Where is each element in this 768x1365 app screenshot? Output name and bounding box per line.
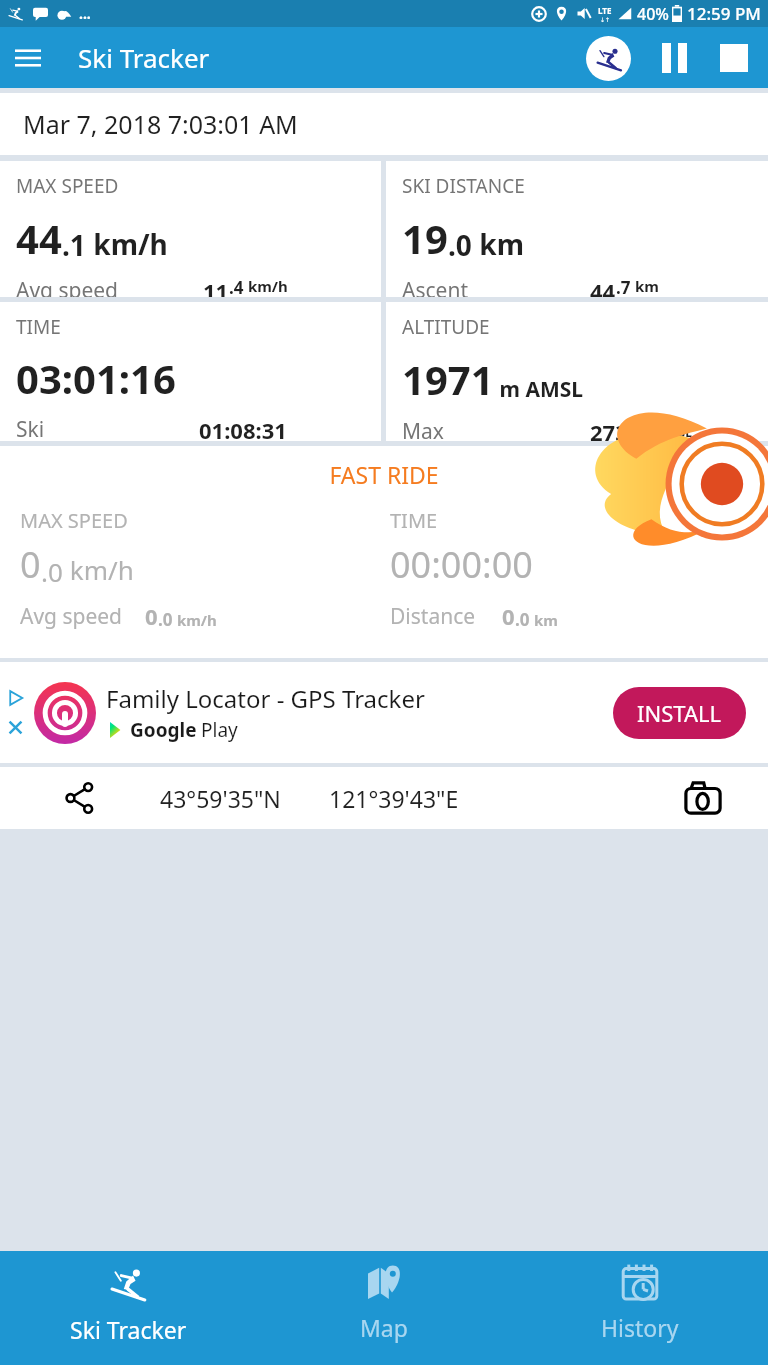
staticText: Ascent bbox=[402, 276, 468, 297]
staticText: Ski Tracker bbox=[70, 1314, 187, 1345]
staticText: m AMSL bbox=[641, 424, 692, 440]
button[interactable]: FAST RIDE bbox=[0, 446, 768, 658]
staticText: ALTITUDE bbox=[402, 314, 490, 340]
button[interactable]: Take photo bbox=[638, 767, 768, 829]
staticText: 121°39'43"E bbox=[329, 783, 459, 814]
button[interactable]: Ski Tracker bbox=[0, 1251, 256, 1365]
button[interactable]: Mar 7, 2018 7:03:01 AM bbox=[0, 93, 768, 155]
button[interactable]: ALTITUDE bbox=[386, 302, 768, 441]
staticText: TIME bbox=[16, 314, 61, 340]
staticText: 03:01:16 bbox=[16, 351, 176, 405]
staticText: Map bbox=[360, 1312, 408, 1343]
button[interactable]: Open navigation menu bbox=[0, 30, 56, 86]
staticText: km bbox=[631, 276, 659, 296]
button[interactable]: Map bbox=[256, 1251, 512, 1365]
staticText: .0 bbox=[448, 226, 472, 264]
staticText: 1971 bbox=[402, 352, 494, 406]
staticText: Google bbox=[130, 717, 197, 743]
staticText: 0 bbox=[502, 601, 515, 631]
staticText: 44 bbox=[590, 276, 616, 297]
staticText: 43°59'35"N bbox=[160, 783, 281, 814]
staticText: 0 bbox=[20, 540, 41, 589]
staticText: Distance bbox=[390, 602, 476, 631]
staticText: m AMSL bbox=[494, 375, 584, 404]
staticText: km bbox=[472, 225, 524, 263]
staticText: km/h bbox=[244, 276, 288, 296]
staticText: Max bbox=[402, 417, 444, 441]
staticText: 44 bbox=[16, 211, 62, 265]
button[interactable]: Start ski tracking bbox=[580, 30, 636, 86]
staticText: 11 bbox=[203, 276, 229, 297]
staticText: .0 bbox=[158, 608, 173, 631]
staticText: 40% bbox=[637, 3, 669, 25]
staticText: km/h bbox=[173, 610, 217, 630]
button[interactable]: TIME bbox=[0, 302, 381, 441]
staticText: SKI DISTANCE bbox=[402, 173, 525, 199]
staticText: Avg speed bbox=[20, 602, 123, 631]
staticText: 12:59 PM bbox=[687, 2, 761, 25]
staticText: INSTALL bbox=[637, 698, 722, 728]
staticText: .0 bbox=[515, 608, 530, 631]
staticText: 19 bbox=[402, 211, 448, 265]
button[interactable]: History bbox=[512, 1251, 768, 1365]
staticText: .1 bbox=[62, 226, 86, 264]
button[interactable]: INSTALL bbox=[613, 687, 746, 739]
staticText: km/h bbox=[63, 552, 134, 587]
staticText: Family Locator - GPS Tracker bbox=[106, 682, 425, 715]
staticText: 01:08:31 bbox=[199, 415, 287, 441]
staticText: History bbox=[601, 1312, 679, 1343]
staticText: MAX SPEED bbox=[20, 507, 128, 534]
button[interactable]: Pause bbox=[650, 34, 698, 82]
staticText: .7 bbox=[616, 276, 631, 297]
staticText: .4 bbox=[229, 276, 244, 297]
staticText: TIME bbox=[390, 507, 438, 534]
staticText: .0 bbox=[41, 554, 63, 589]
button[interactable]: Family Locator - GPS Tracker bbox=[0, 662, 768, 763]
staticText: 00:00:00 bbox=[390, 540, 533, 589]
button[interactable]: SKI DISTANCE bbox=[386, 161, 768, 297]
staticText: ... bbox=[79, 4, 91, 23]
staticText: Play bbox=[201, 717, 238, 743]
staticText: ↓↑ bbox=[600, 16, 611, 23]
button[interactable]: Share bbox=[0, 767, 160, 829]
staticText: Avg speed bbox=[16, 276, 119, 297]
staticText: km/h bbox=[86, 225, 168, 263]
staticText: 0 bbox=[145, 601, 158, 631]
staticText: LTE bbox=[598, 5, 612, 16]
staticText: Ski bbox=[16, 415, 45, 441]
staticText: Ski Tracker bbox=[78, 40, 210, 75]
staticText: 2730 bbox=[590, 417, 641, 441]
staticText: MAX SPEED bbox=[16, 173, 119, 199]
staticText: FAST RIDE bbox=[0, 459, 768, 490]
button[interactable]: MAX SPEED bbox=[0, 161, 381, 297]
staticText: km bbox=[530, 610, 558, 630]
staticText: Mar 7, 2018 7:03:01 AM bbox=[23, 107, 298, 141]
button[interactable]: Stop bbox=[710, 34, 758, 82]
